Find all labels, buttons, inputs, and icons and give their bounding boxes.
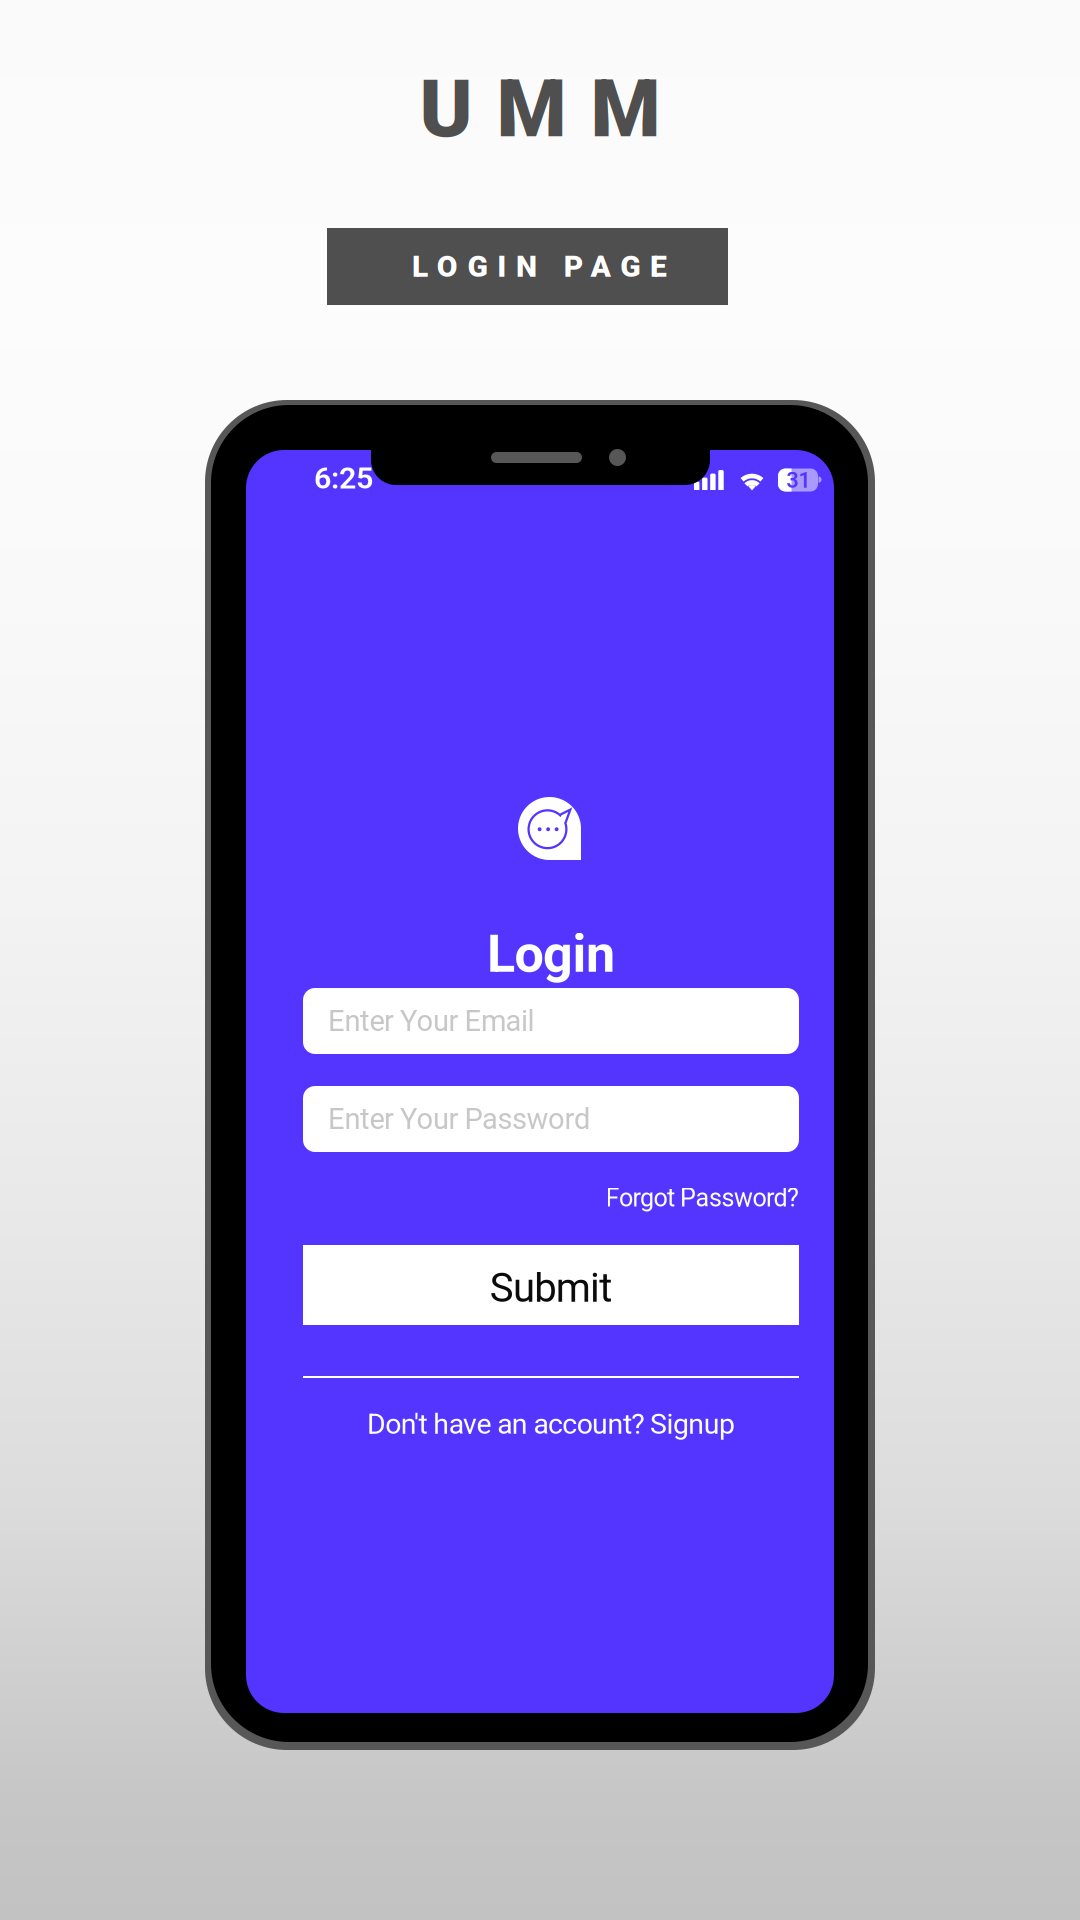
staticText: Submit: [490, 1265, 612, 1311]
button[interactable]: Enter Your Email: [303, 988, 799, 1054]
button[interactable]: Submit: [303, 1245, 799, 1325]
staticText: Enter Your Email: [328, 1004, 534, 1038]
staticText: 31: [786, 468, 810, 493]
staticText: Forgot Password?: [605, 1183, 799, 1213]
button[interactable]: Don't have an account? Signup: [303, 1405, 799, 1443]
staticText: UMM: [419, 62, 660, 156]
staticText: Don't have an account? Signup: [367, 1407, 735, 1441]
button[interactable]: Enter Your Password: [303, 1086, 799, 1152]
staticText: Login: [487, 923, 615, 984]
staticText: LOGIN PAGE: [412, 249, 667, 284]
staticText: 6:25: [314, 460, 373, 496]
staticText: Enter Your Password: [328, 1102, 590, 1136]
button[interactable]: Forgot Password?: [303, 1181, 799, 1215]
